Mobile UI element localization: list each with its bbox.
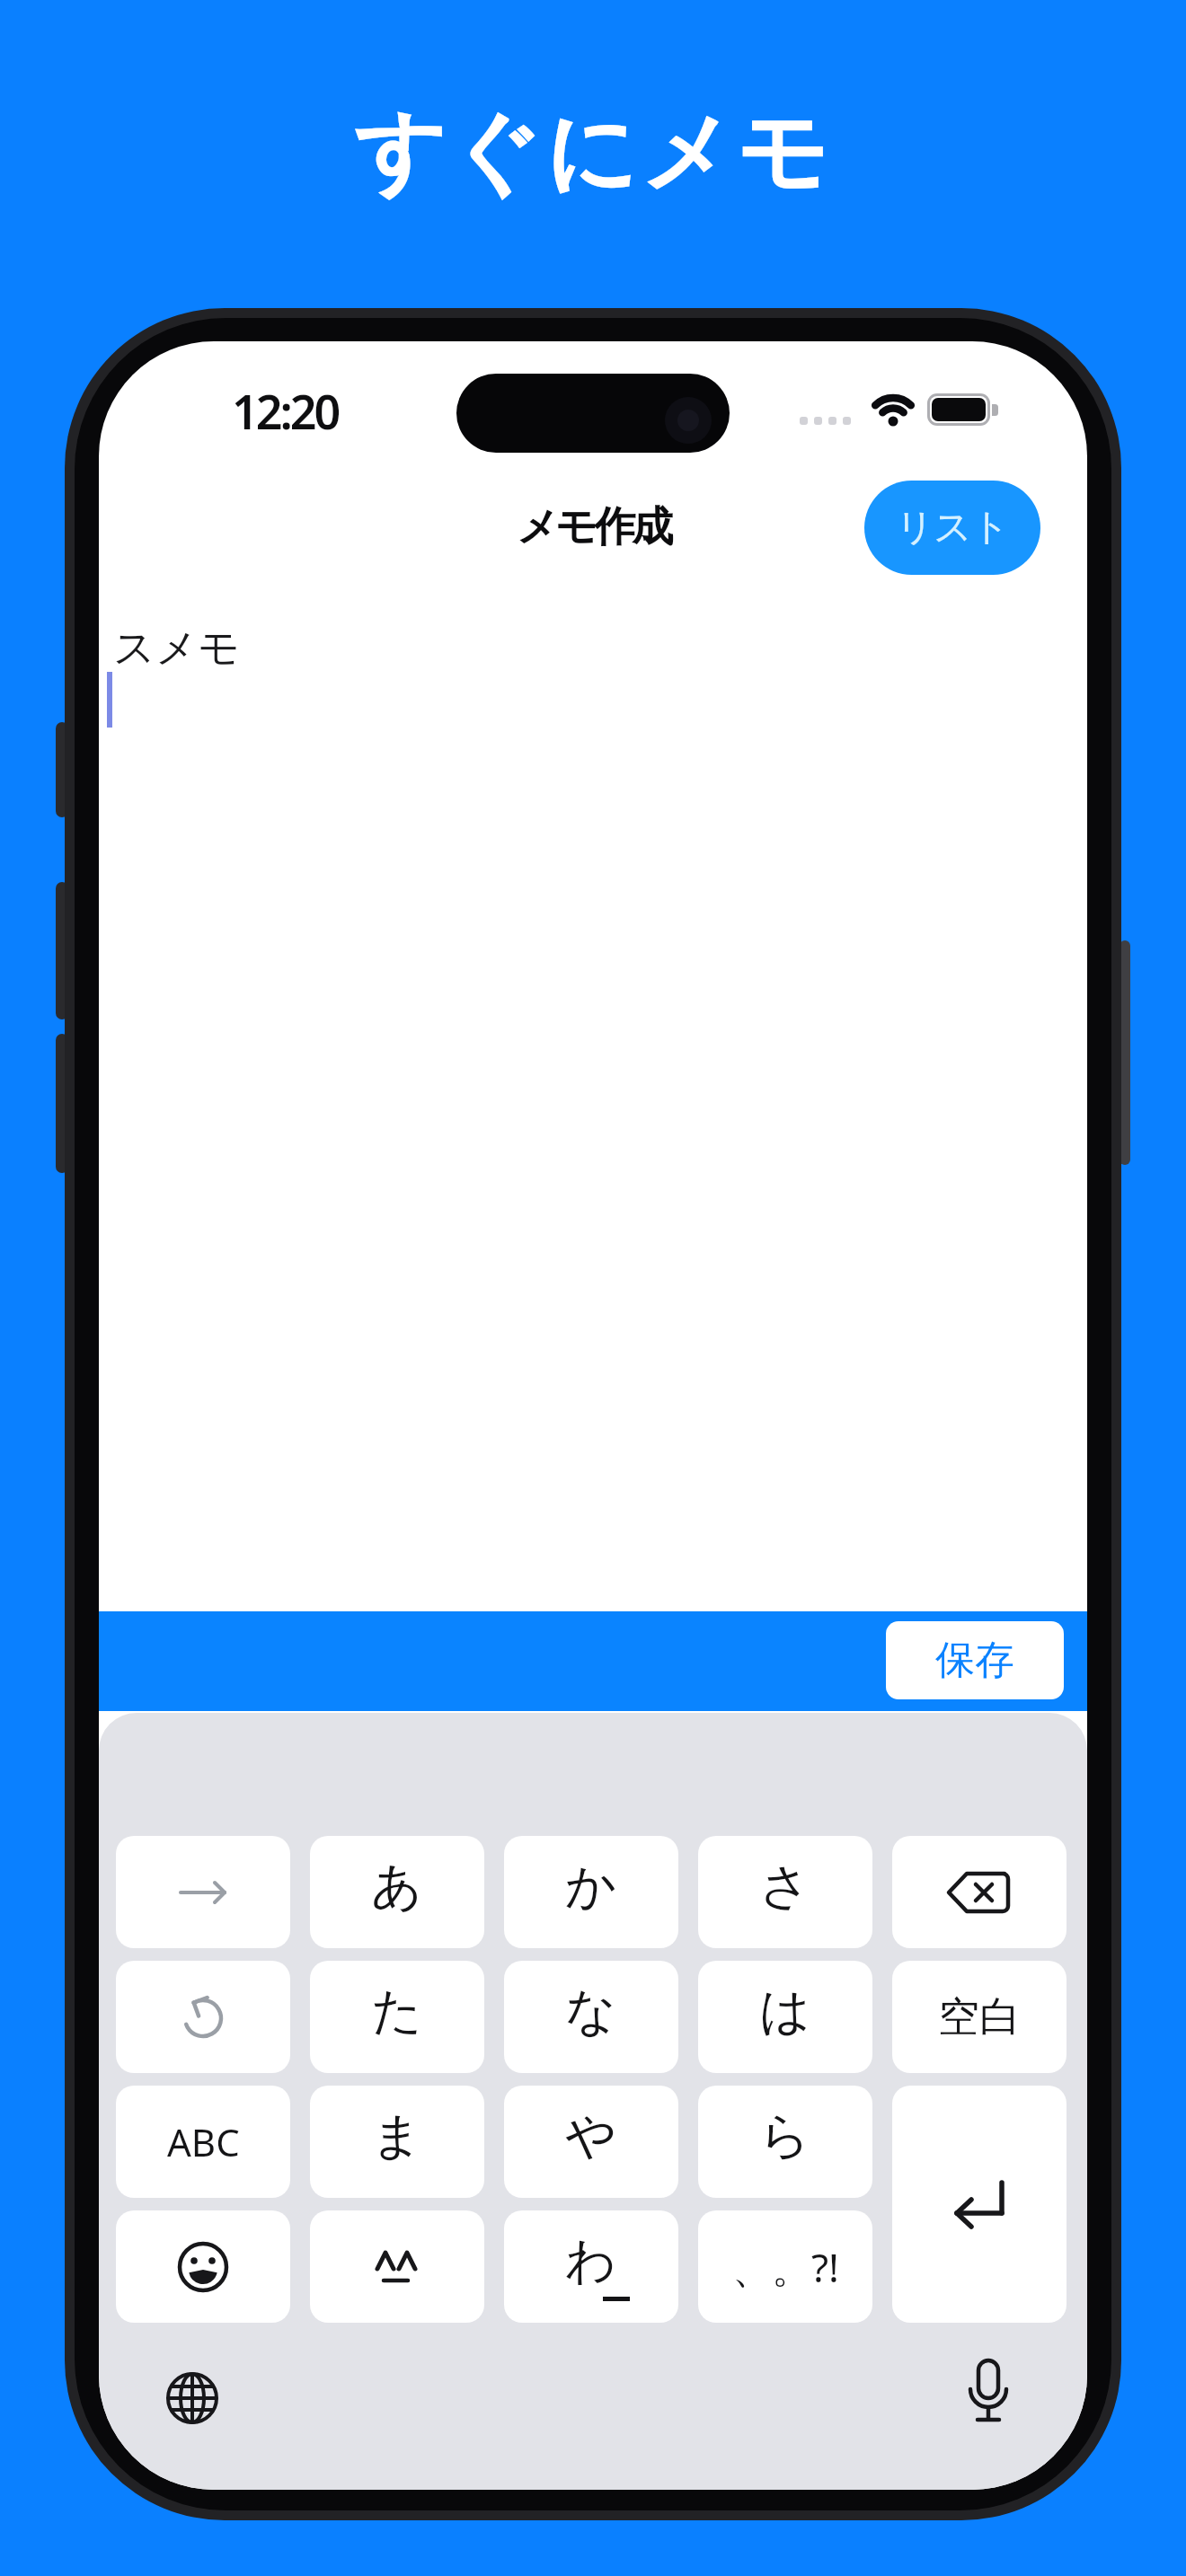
staticText: 空白 <box>938 1991 1021 2043</box>
staticText: や <box>565 2104 617 2168</box>
button[interactable]: 保存 <box>886 1621 1064 1699</box>
staticText: リスト <box>896 504 1009 551</box>
staticText: メモ作成 <box>517 501 670 553</box>
button[interactable]: リスト <box>864 481 1040 575</box>
staticText: は <box>759 1980 811 2043</box>
staticText: 、。?! <box>732 2240 839 2294</box>
button[interactable]: や <box>504 2086 678 2198</box>
button[interactable]: ABC <box>116 2086 290 2198</box>
staticText: すぐにメモ <box>354 97 832 210</box>
button[interactable]: わ <box>504 2210 678 2323</box>
button[interactable]: 、。?! <box>698 2210 872 2323</box>
staticText: か <box>565 1855 617 1919</box>
staticText: わ <box>565 2229 617 2293</box>
staticText: あ <box>371 1855 423 1919</box>
staticText: 保存 <box>935 1636 1014 1685</box>
button[interactable] <box>892 2086 1067 2323</box>
button[interactable]: は <box>698 1961 872 2073</box>
staticText: スメモ <box>113 622 241 675</box>
button[interactable]: ま <box>310 2086 484 2198</box>
button[interactable]: た <box>310 1961 484 2073</box>
button[interactable]: あ <box>310 1836 484 1948</box>
staticText: ま <box>371 2104 423 2168</box>
button[interactable] <box>892 1836 1067 1948</box>
button[interactable] <box>165 2371 219 2425</box>
staticText: ABC <box>167 2116 240 2167</box>
button[interactable]: か <box>504 1836 678 1948</box>
staticText: さ <box>759 1855 811 1919</box>
button[interactable] <box>310 2210 484 2323</box>
button[interactable]: 空白 <box>892 1961 1067 2073</box>
staticText: 12:20 <box>232 379 339 443</box>
staticText: ら <box>759 2104 811 2168</box>
button[interactable] <box>116 1961 290 2073</box>
button[interactable] <box>116 2210 290 2323</box>
staticText: な <box>565 1980 617 2043</box>
button[interactable]: な <box>504 1961 678 2073</box>
button[interactable]: さ <box>698 1836 872 1948</box>
staticText: た <box>371 1980 423 2043</box>
button[interactable]: ら <box>698 2086 872 2198</box>
button[interactable] <box>116 1836 290 1948</box>
button[interactable] <box>963 2359 1013 2434</box>
